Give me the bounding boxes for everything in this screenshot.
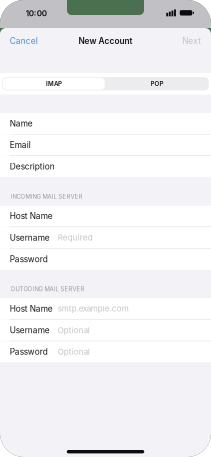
button[interactable]: Password	[0, 249, 211, 270]
button[interactable]: Cancel	[0, 28, 44, 54]
staticText: New Account	[78, 36, 132, 46]
staticText: Password	[10, 254, 48, 264]
button[interactable]: Username	[0, 320, 211, 341]
staticText: Host Name	[10, 211, 53, 221]
button[interactable]: Next	[176, 28, 211, 54]
staticText: 10:00	[26, 9, 47, 18]
button[interactable]: Password	[0, 341, 211, 362]
button[interactable]: Description	[0, 156, 211, 177]
button[interactable]: Host Name	[0, 206, 211, 227]
staticText: Optional	[58, 347, 90, 356]
staticText: POP	[151, 80, 164, 87]
staticText: Required	[58, 233, 93, 242]
staticText: Email	[10, 140, 31, 150]
staticText: IMAP	[46, 80, 62, 87]
staticText: Username	[10, 325, 50, 335]
button[interactable]: Username	[0, 227, 211, 248]
button[interactable]: IMAP	[2, 77, 105, 90]
staticText: Optional	[58, 325, 90, 335]
staticText: Host Name	[10, 304, 53, 314]
staticText: INCOMING MAIL SERVER	[11, 193, 83, 200]
button[interactable]: Email	[0, 135, 211, 156]
staticText: smtp.example.com	[58, 304, 129, 313]
button[interactable]: POP	[105, 77, 209, 90]
staticText: Cancel	[10, 36, 38, 46]
button[interactable]: Name	[0, 113, 211, 134]
staticText: Name	[10, 119, 33, 128]
staticText: Username	[10, 233, 50, 243]
staticText: Next	[182, 36, 201, 46]
staticText: Password	[10, 347, 48, 357]
staticText: OUTGOING MAIL SERVER	[11, 286, 85, 293]
staticText: Description	[10, 162, 55, 171]
button[interactable]: Host Name	[0, 298, 211, 319]
